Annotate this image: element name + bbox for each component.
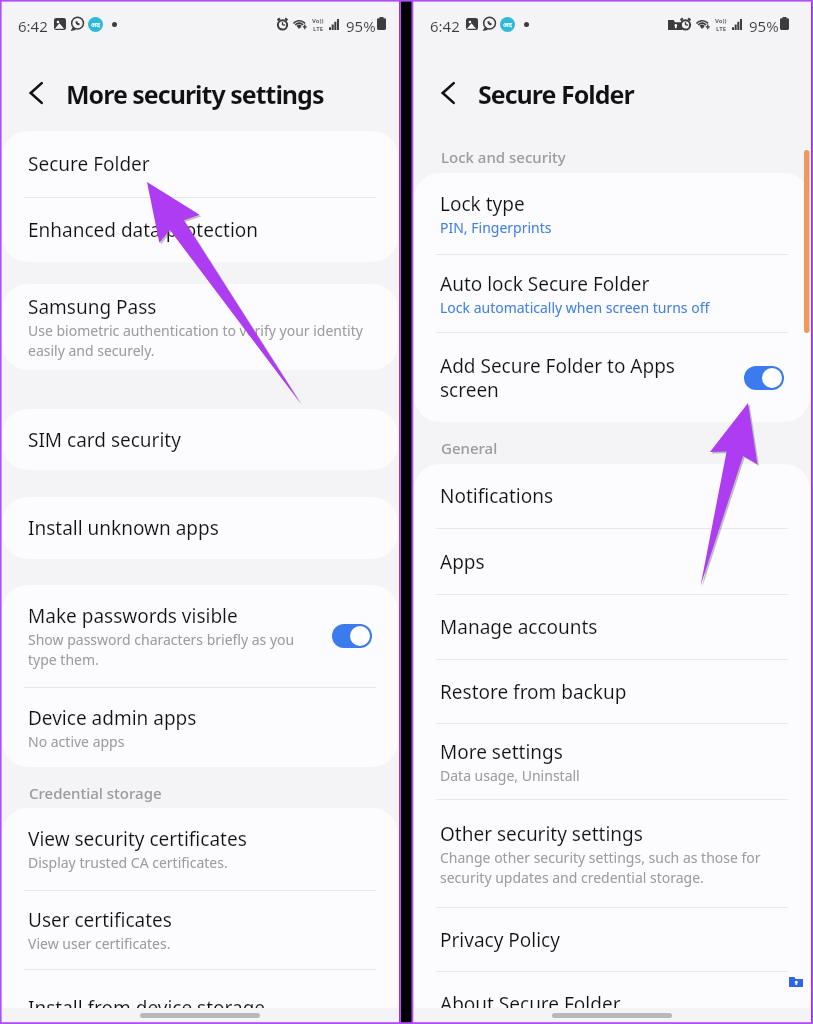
button[interactable]: Back xyxy=(25,82,47,104)
staticText: Install unknown apps xyxy=(28,515,219,541)
staticText: Secure Folder xyxy=(478,77,634,111)
button[interactable]: Secure Folder xyxy=(2,131,398,197)
staticText: Credential storage xyxy=(29,783,162,803)
button[interactable]: SIM card security xyxy=(2,409,398,470)
staticText: More settings xyxy=(440,739,563,765)
staticText: View user certificates. xyxy=(28,934,370,953)
staticText: Apps xyxy=(440,549,485,575)
staticText: Vo)) xyxy=(312,17,324,25)
button[interactable]: Toggle xyxy=(332,624,372,648)
staticText: Lock type xyxy=(440,191,525,217)
button[interactable]: Apps xyxy=(414,529,810,594)
staticText: 95% xyxy=(749,16,779,36)
button[interactable]: Other security settings xyxy=(414,800,810,907)
button[interactable]: Install from device storage xyxy=(2,961,398,1024)
staticText: अद xyxy=(91,20,101,30)
button[interactable]: Toggle xyxy=(744,366,784,390)
button[interactable]: Install unknown apps xyxy=(2,497,398,559)
staticText: LTE xyxy=(313,25,324,33)
staticText: Other security settings xyxy=(440,821,643,847)
staticText: Lock automatically when screen turns off xyxy=(440,298,782,317)
staticText: Samsung Pass xyxy=(28,294,157,320)
button[interactable]: Restore from backup xyxy=(414,660,810,723)
staticText: Vo)) xyxy=(715,17,727,25)
staticText: No active apps xyxy=(28,732,370,751)
staticText: Secure Folder xyxy=(28,151,150,177)
button[interactable]: Notifications xyxy=(414,464,810,528)
button[interactable]: Device admin apps xyxy=(2,688,398,767)
staticText: Auto lock Secure Folder xyxy=(440,271,650,297)
button[interactable]: Auto lock Secure Folder xyxy=(414,255,810,332)
button[interactable]: Manage accounts xyxy=(414,595,810,659)
staticText: SIM card security xyxy=(28,427,181,453)
staticText: View security certificates xyxy=(28,826,247,852)
staticText: Lock and security xyxy=(441,147,566,167)
staticText: General xyxy=(441,438,498,458)
staticText: About Secure Folder xyxy=(440,991,621,1017)
staticText: Manage accounts xyxy=(440,614,598,640)
staticText: 6:42 xyxy=(18,16,48,36)
button[interactable]: Enhanced data protection xyxy=(2,198,398,262)
staticText: Notifications xyxy=(440,483,554,509)
button[interactable]: Add Secure Folder to Apps screen xyxy=(414,333,810,422)
button[interactable]: User certificates xyxy=(2,891,398,969)
staticText: 95% xyxy=(346,16,376,36)
button[interactable]: Make passwords visible xyxy=(2,585,398,687)
staticText: Change other security settings, such as … xyxy=(440,848,775,887)
staticText: More security settings xyxy=(66,77,324,111)
staticText: LTE xyxy=(716,25,727,33)
staticText: Restore from backup xyxy=(440,679,627,705)
button[interactable]: About Secure Folder xyxy=(414,966,810,1024)
button[interactable]: Samsung Pass xyxy=(2,284,398,370)
staticText: Add Secure Folder to Apps screen xyxy=(440,353,688,402)
button[interactable]: Back xyxy=(437,82,459,104)
staticText: User certificates xyxy=(28,907,172,933)
staticText: Use biometric authentication to verify y… xyxy=(28,321,370,360)
button[interactable]: More settings xyxy=(414,724,810,799)
staticText: Install from device storage xyxy=(28,995,266,1021)
button[interactable]: View security certificates xyxy=(2,808,398,890)
button[interactable]: Privacy Policy xyxy=(414,908,810,971)
staticText: Make passwords visible xyxy=(28,603,238,629)
staticText: Enhanced data protection xyxy=(28,217,259,243)
staticText: Data usage, Uninstall xyxy=(440,766,782,785)
staticText: Display trusted CA certificates. xyxy=(28,853,370,872)
staticText: 6:42 xyxy=(430,16,460,36)
staticText: Device admin apps xyxy=(28,705,197,731)
staticText: Privacy Policy xyxy=(440,927,560,953)
button[interactable]: Lock type xyxy=(414,173,810,254)
staticText: Show password characters briefly as you … xyxy=(28,630,313,669)
staticText: PIN, Fingerprints xyxy=(440,218,782,237)
staticText: अद xyxy=(503,20,513,30)
